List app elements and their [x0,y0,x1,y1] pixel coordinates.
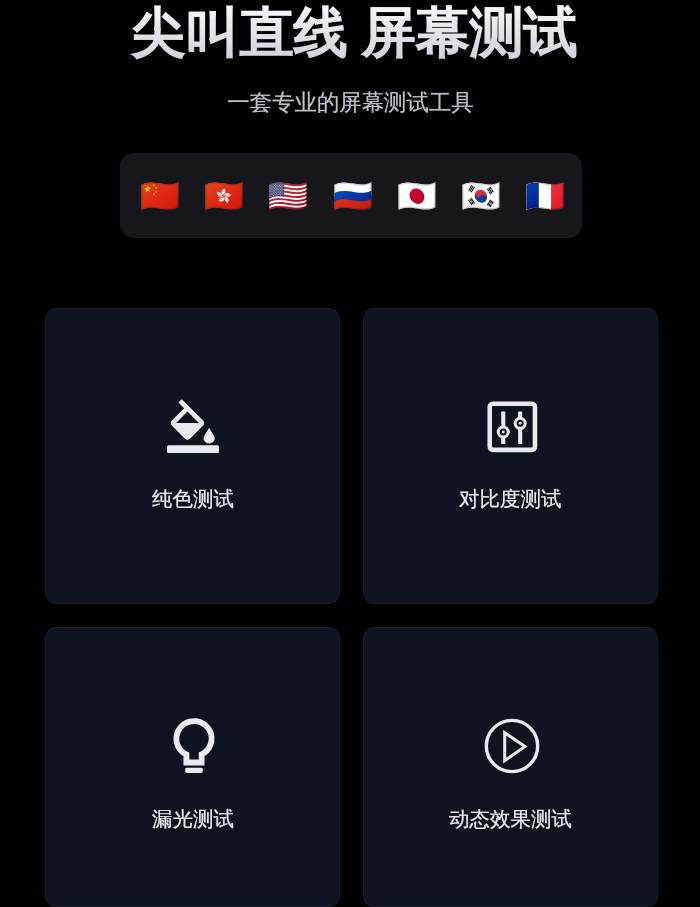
button[interactable]: 日本語 [397,177,437,215]
button[interactable]: 简体中文 [140,177,180,215]
staticText: 🇰🇷 [461,177,501,215]
staticText: 🇨🇳 [140,177,180,215]
staticText: 🇭🇰 [204,177,244,215]
other: 纯色测试 [167,401,219,453]
button[interactable]: English [268,177,308,215]
button[interactable]: Français [525,177,565,215]
staticText: 🇫🇷 [525,177,565,215]
staticText: 🇷🇺 [333,177,373,215]
staticText: 尖叫直线 屏幕测试 [130,0,577,68]
other: 对比度测试 [487,401,539,453]
staticText: 对比度测试 [459,486,562,512]
staticText: 🇯🇵 [397,177,437,215]
button[interactable]: 纯色测试 [45,308,340,604]
button[interactable]: 한국어 [461,177,501,215]
button[interactable]: 对比度测试 [363,308,658,604]
button[interactable]: 繁體中文 [204,177,244,215]
other: 漏光测试 [166,717,222,773]
button[interactable]: Русский [333,177,373,215]
staticText: 🇺🇸 [268,177,308,215]
other: 动态效果测试 [484,718,540,774]
staticText: 一套专业的屏幕测试工具 [227,88,474,116]
button[interactable]: 漏光测试 [45,627,340,907]
button[interactable]: 动态效果测试 [363,627,658,907]
staticText: 纯色测试 [152,486,234,512]
staticText: 漏光测试 [152,806,234,832]
staticText: 动态效果测试 [449,806,572,832]
